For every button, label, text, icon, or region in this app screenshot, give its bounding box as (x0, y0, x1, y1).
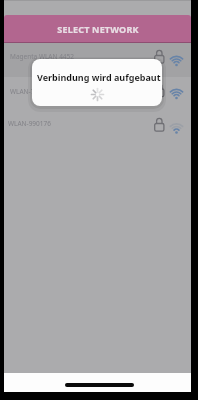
staticText: WLAN-778812 (10, 87, 53, 96)
staticText: WLAN-990176 (8, 119, 51, 128)
button[interactable]: WLAN-778812 (4, 77, 191, 111)
staticText: SELECT NETWORK (57, 23, 139, 35)
button[interactable]: Magenta WLAN 4452 (4, 43, 191, 77)
button[interactable]: WLAN-990176 (4, 110, 191, 144)
staticText: Magenta WLAN 4452 (10, 52, 75, 61)
staticText: Verbindung wird aufgebaut (37, 71, 161, 83)
